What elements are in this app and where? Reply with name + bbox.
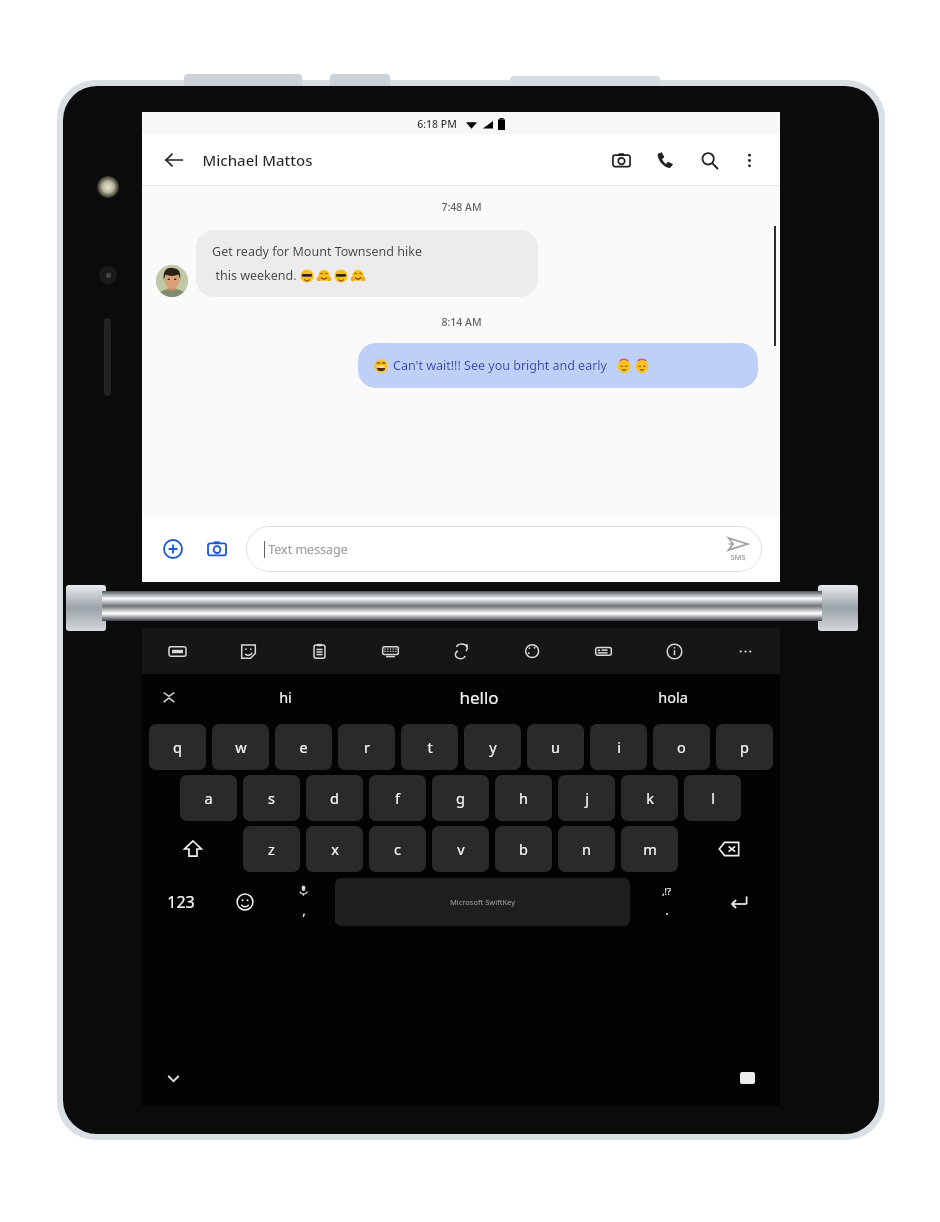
staticText: q — [173, 737, 182, 757]
button[interactable]: Get ready for Mount Townsend hike — [196, 230, 538, 297]
staticText: l — [711, 788, 715, 808]
button[interactable]: GIF — [162, 636, 192, 666]
staticText: r — [364, 737, 370, 757]
button[interactable]: Clipboard — [304, 636, 334, 666]
button[interactable]: Take photo — [200, 532, 234, 566]
staticText: hi — [279, 687, 292, 707]
staticText: c — [394, 839, 401, 859]
button[interactable]: Enter — [701, 878, 776, 926]
button[interactable]: n — [558, 826, 615, 872]
button[interactable]: Back — [156, 142, 192, 178]
button[interactable]: Toolbar — [588, 636, 618, 666]
button[interactable]: More options — [732, 143, 766, 177]
button[interactable]: i — [590, 724, 647, 770]
staticText: 7:48 AM — [441, 200, 482, 214]
staticText: this weekend. — [212, 267, 300, 284]
staticText: v — [457, 839, 465, 859]
button[interactable]: Collapse — [156, 684, 182, 710]
button[interactable]: r — [338, 724, 395, 770]
staticText: Michael Mattos — [202, 150, 313, 170]
staticText: x — [331, 839, 339, 859]
staticText: , — [302, 901, 306, 919]
button[interactable]: hello — [382, 674, 576, 720]
button[interactable]: hi — [188, 674, 382, 720]
button[interactable]: Backspace — [681, 826, 776, 872]
staticText: g — [456, 788, 465, 808]
staticText: Microsoft SwiftKey — [450, 897, 515, 907]
button[interactable]: More — [730, 636, 760, 666]
staticText: t — [427, 737, 433, 757]
staticText: n — [582, 839, 591, 859]
button[interactable]: Add attachment — [156, 532, 190, 566]
staticText: y — [489, 737, 497, 757]
staticText: s — [268, 788, 275, 808]
button[interactable]: c — [369, 826, 426, 872]
staticText: u — [551, 737, 560, 757]
staticText: i — [617, 737, 621, 757]
staticText: 123 — [167, 891, 195, 913]
button[interactable]: m — [621, 826, 678, 872]
staticText: d — [330, 788, 339, 808]
button[interactable]: Stickers — [233, 636, 263, 666]
staticText: e — [299, 737, 308, 757]
button[interactable]: ,!? — [632, 878, 701, 926]
button[interactable]: e — [275, 724, 332, 770]
staticText: j — [585, 788, 589, 808]
staticText: k — [646, 788, 654, 808]
staticText: hola — [658, 687, 688, 707]
staticText: w — [235, 737, 247, 757]
button[interactable]: Attach photo — [604, 143, 638, 177]
button[interactable]: Microsoft SwiftKey — [335, 878, 630, 926]
staticText: ,!? — [662, 885, 671, 897]
button[interactable]: Can't wait!!! See you bright and early — [358, 343, 758, 388]
button[interactable]: s — [243, 775, 300, 821]
button[interactable]: Info — [659, 636, 689, 666]
staticText: f — [395, 788, 400, 808]
staticText: hello — [459, 686, 499, 709]
staticText: Text message — [268, 541, 348, 558]
button[interactable]: b — [495, 826, 552, 872]
button[interactable]: hola — [576, 674, 770, 720]
staticText: z — [268, 839, 275, 859]
staticText: 6:18 PM — [417, 117, 457, 131]
button[interactable]: Keyboard layout — [375, 636, 405, 666]
button[interactable]: Switch keyboard — [734, 1065, 760, 1091]
button[interactable]: Hide keyboard — [160, 1065, 186, 1091]
button[interactable]: q — [149, 724, 206, 770]
button[interactable]: y — [464, 724, 521, 770]
button[interactable]: o — [653, 724, 710, 770]
button[interactable]: Send SMS — [728, 536, 748, 562]
button[interactable]: k — [621, 775, 678, 821]
staticText: Can't wait!!! See you bright and early — [393, 357, 607, 374]
button[interactable]: a — [180, 775, 237, 821]
button[interactable]: Emoji — [215, 878, 274, 926]
staticText: o — [677, 737, 686, 757]
button[interactable]: 123 — [146, 878, 215, 926]
button[interactable]: Themes — [517, 636, 547, 666]
button[interactable]: w — [212, 724, 269, 770]
staticText: SMS — [730, 552, 746, 562]
staticText: p — [740, 737, 749, 757]
button[interactable]: f — [369, 775, 426, 821]
button[interactable]: j — [558, 775, 615, 821]
button[interactable]: z — [243, 826, 300, 872]
button[interactable]: g — [432, 775, 489, 821]
button[interactable]: Search — [692, 143, 726, 177]
button[interactable]: l — [684, 775, 741, 821]
button[interactable]: x — [306, 826, 363, 872]
staticText: . — [665, 901, 669, 919]
button[interactable]: t — [401, 724, 458, 770]
staticText: b — [519, 839, 528, 859]
staticText: h — [519, 788, 528, 808]
button[interactable]: h — [495, 775, 552, 821]
button[interactable]: Comma and voice input — [274, 878, 333, 926]
staticText: Get ready for Mount Townsend hike — [212, 243, 422, 260]
button[interactable]: Shift — [146, 826, 240, 872]
button[interactable]: Text message — [246, 526, 762, 572]
button[interactable]: v — [432, 826, 489, 872]
button[interactable]: p — [716, 724, 773, 770]
button[interactable]: d — [306, 775, 363, 821]
button[interactable]: Translate — [446, 636, 476, 666]
button[interactable]: Call — [648, 143, 682, 177]
button[interactable]: u — [527, 724, 584, 770]
